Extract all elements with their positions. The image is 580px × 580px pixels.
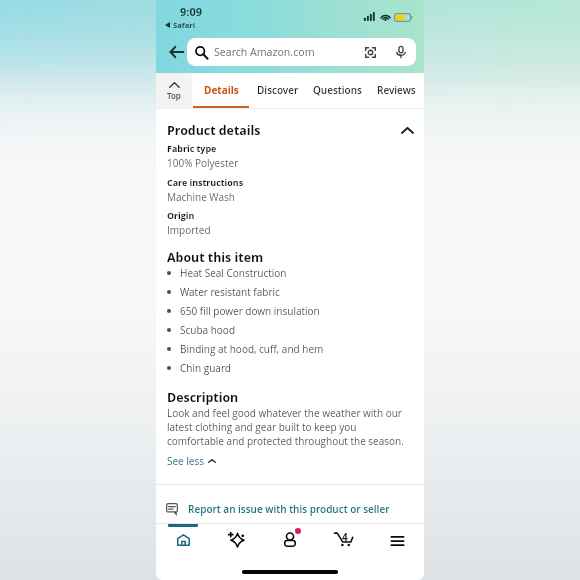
button[interactable]: Rufus shopping assistant	[210, 524, 264, 560]
staticText: Imported	[167, 223, 211, 237]
staticText: Report an issue with this product or sel…	[188, 502, 390, 516]
button[interactable]: See less	[167, 454, 216, 468]
button[interactable]: Search Amazon.com	[187, 38, 416, 66]
staticText: 4	[342, 530, 348, 544]
staticText: 650 fill power down insulation	[180, 304, 320, 318]
button[interactable]: Report an issue with this product or sel…	[156, 502, 424, 516]
staticText: Top	[167, 90, 181, 101]
staticText: About this item	[167, 249, 264, 266]
staticText: Product details	[167, 122, 401, 139]
button[interactable]: Reviews	[366, 73, 424, 109]
staticText: Questions	[313, 83, 362, 97]
button[interactable]: Home	[156, 524, 210, 560]
button[interactable]: Discover	[247, 73, 309, 109]
staticText: Fabric type	[167, 142, 217, 154]
staticText: Details	[204, 83, 239, 97]
staticText: Search Amazon.com	[214, 45, 315, 59]
staticText: Safari	[173, 20, 196, 30]
button[interactable]: Voice search	[396, 46, 406, 58]
staticText: Machine Wash	[167, 190, 235, 204]
staticText: 100% Polyester	[167, 156, 239, 170]
button[interactable]: Details	[193, 73, 249, 109]
button[interactable]: Questions	[303, 73, 372, 109]
staticText: See less	[167, 454, 204, 468]
staticText: Binding at hood, cuff, and hem	[180, 342, 324, 356]
button[interactable]: Product details	[156, 122, 424, 139]
staticText: 9:09	[180, 4, 202, 19]
staticText: Look and feel good whatever the weather …	[167, 406, 413, 448]
staticText: Discover	[257, 83, 299, 97]
staticText: Scuba hood	[180, 323, 236, 337]
button[interactable]: Your account	[264, 524, 318, 560]
staticText: Origin	[167, 209, 195, 221]
button[interactable]: Back	[165, 39, 187, 65]
button[interactable]: Menu	[370, 524, 424, 560]
staticText: Chin guard	[180, 361, 231, 375]
staticText: Water resistant fabric	[180, 285, 280, 299]
button[interactable]: Top	[156, 73, 192, 109]
staticText: Care instructions	[167, 176, 244, 188]
staticText: Reviews	[377, 83, 416, 97]
staticText: Heat Seal Construction	[180, 266, 287, 280]
staticText: Description	[167, 389, 239, 406]
button[interactable]: Cart, 4 items	[318, 524, 372, 560]
button[interactable]: Scan with camera	[365, 47, 376, 58]
